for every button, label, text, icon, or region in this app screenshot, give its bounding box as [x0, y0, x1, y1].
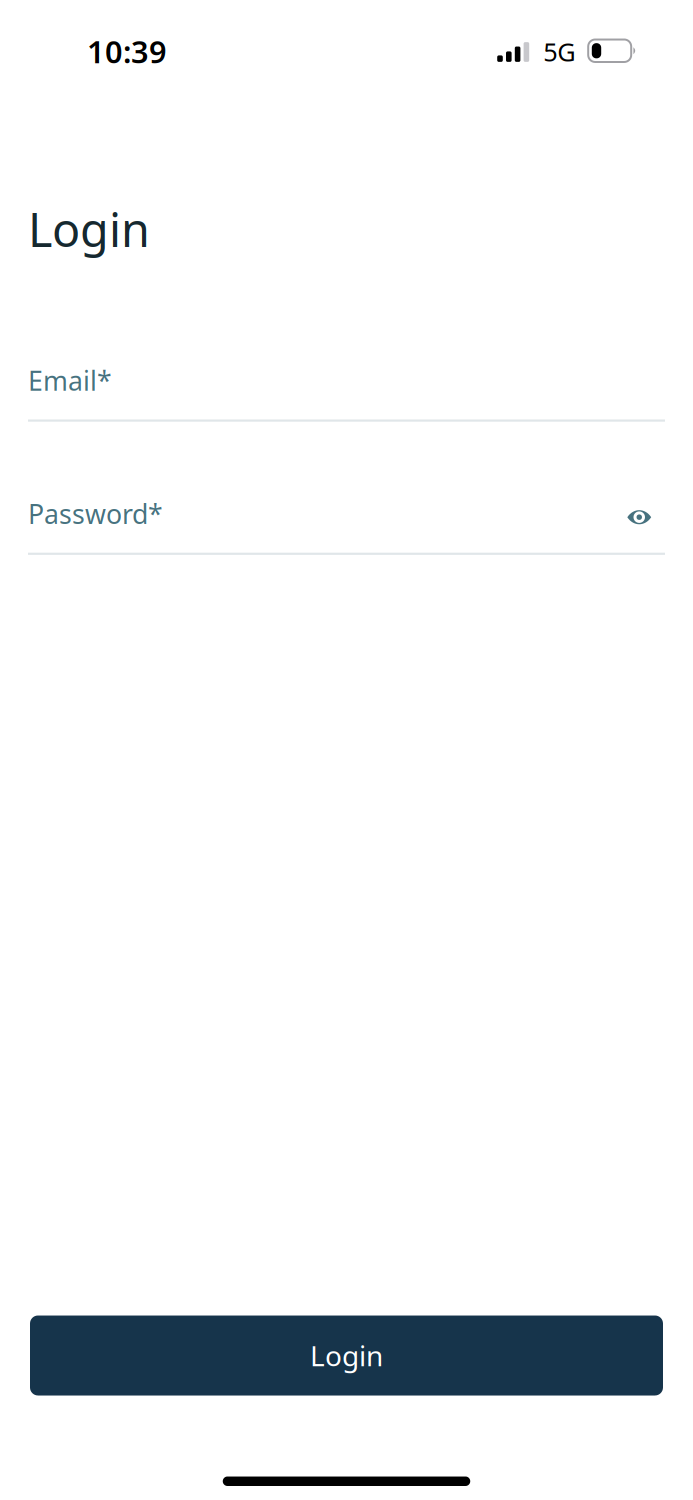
button[interactable]: Show password — [626, 502, 665, 525]
button[interactable]: Login — [30, 1315, 663, 1395]
staticText: 5G — [543, 35, 575, 68]
staticText: Login — [310, 1337, 383, 1374]
button[interactable]: Email* — [28, 366, 665, 395]
staticText: 10:39 — [87, 31, 167, 72]
staticText: Email* — [28, 363, 112, 398]
staticText: Password* — [28, 496, 163, 531]
button[interactable]: Password* — [28, 499, 626, 528]
staticText: Login — [28, 198, 150, 260]
